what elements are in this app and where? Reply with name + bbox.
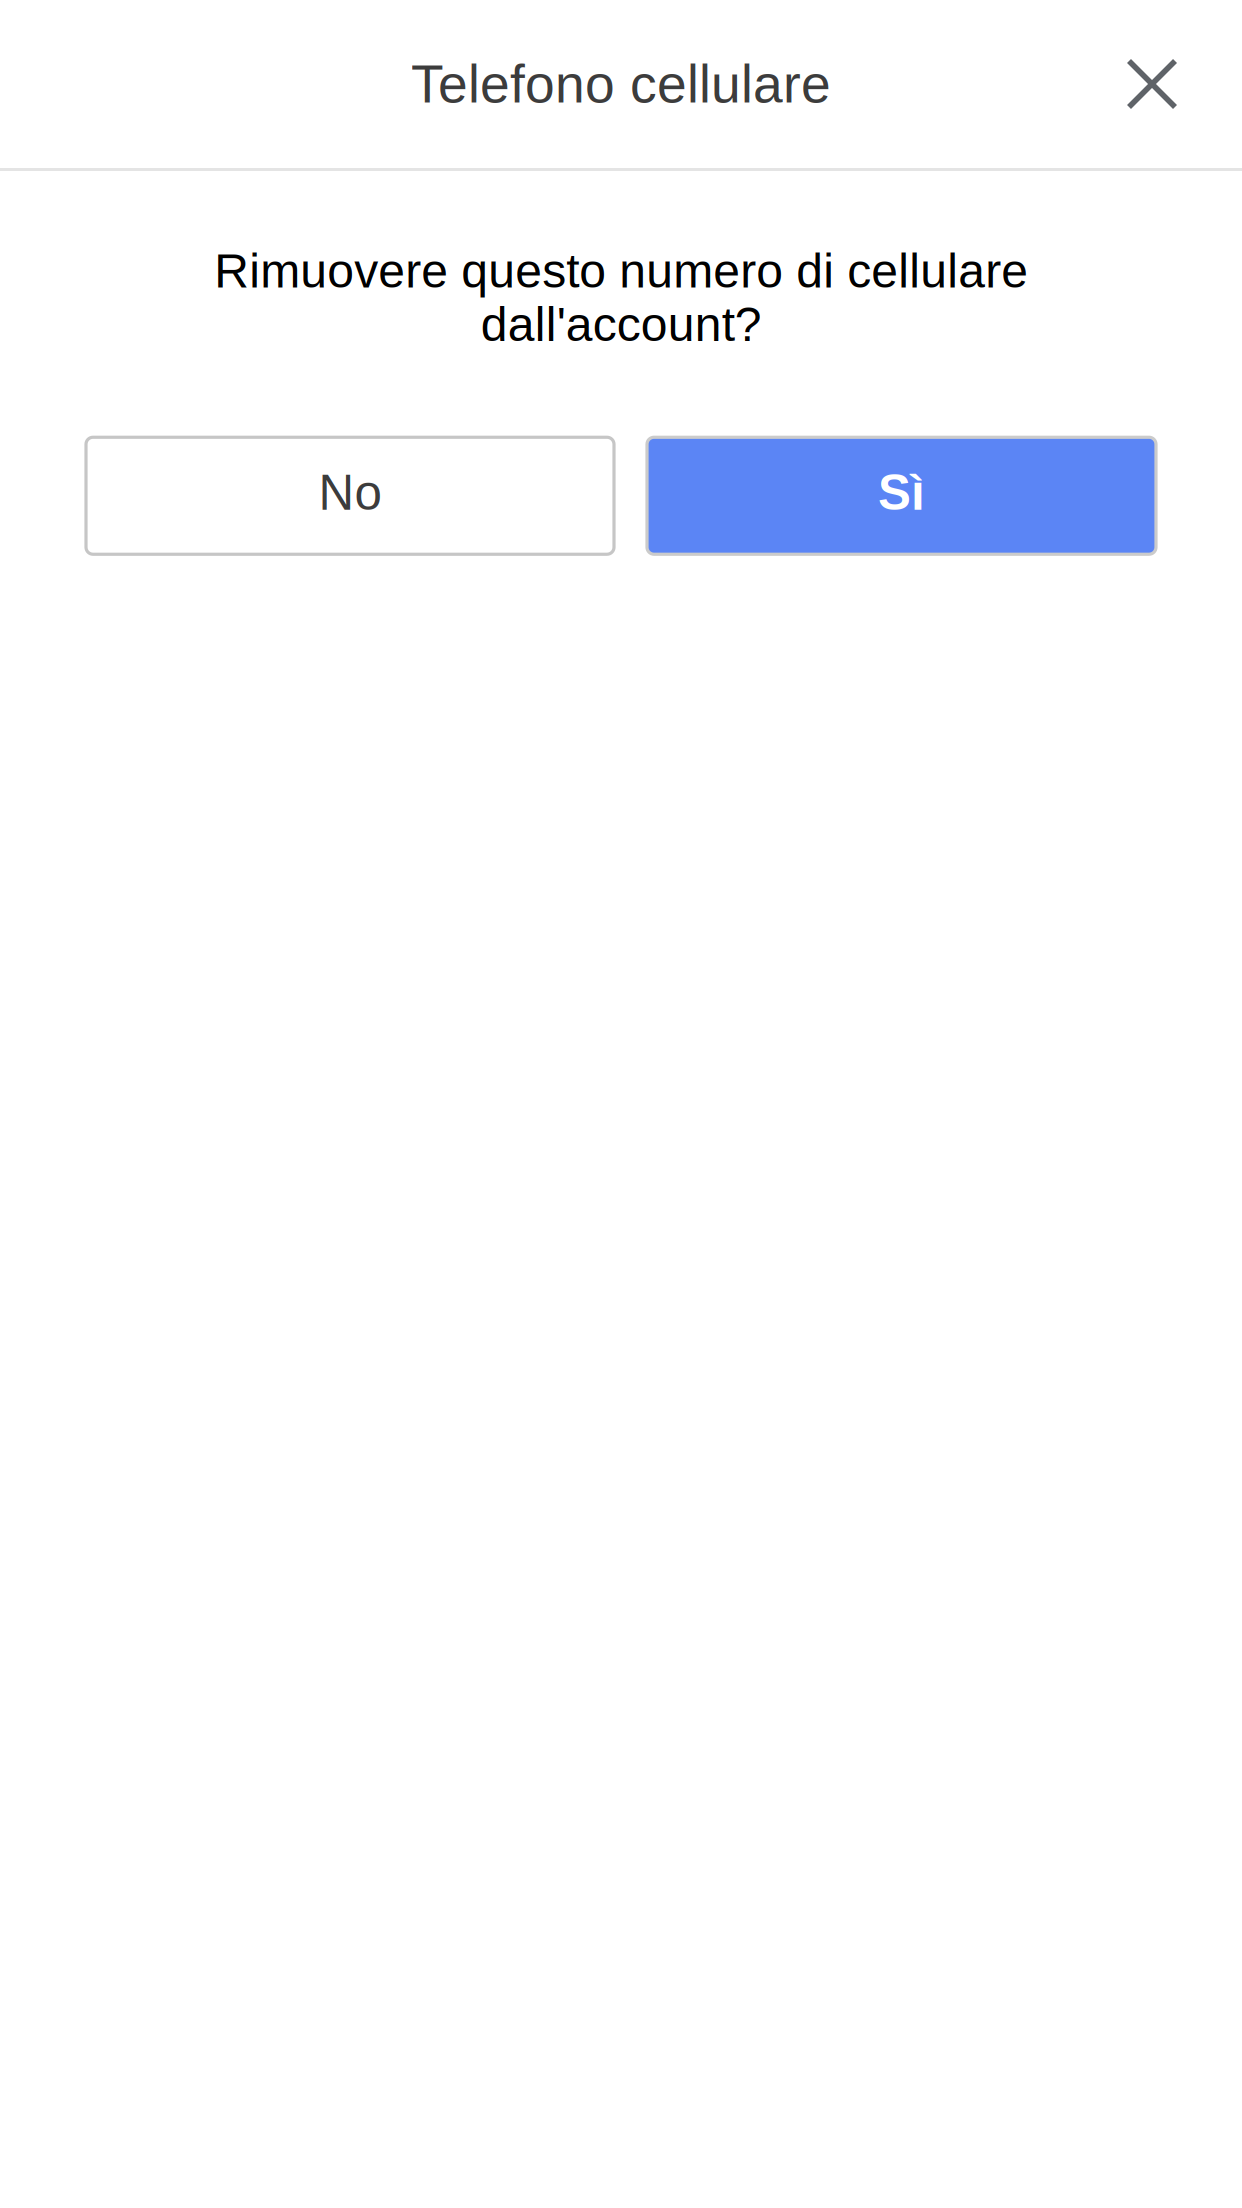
button[interactable]: Sì <box>647 437 1156 554</box>
staticText: Telefono cellulare <box>411 54 831 114</box>
staticText: No <box>318 465 381 520</box>
button[interactable]: No <box>86 437 614 554</box>
staticText: Sì <box>878 465 925 520</box>
button[interactable]: Chiudi <box>1082 0 1242 168</box>
staticText: Rimuovere questo numero di cellulare dal… <box>214 244 1028 351</box>
